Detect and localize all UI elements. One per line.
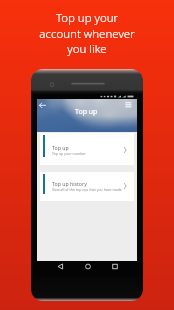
staticText: View all of the top ups that you have ma…	[52, 187, 122, 192]
staticText: Top up	[75, 107, 98, 117]
staticText: Top up your number	[52, 151, 86, 156]
staticText: Top up your account whenever you like	[0, 10, 174, 56]
button[interactable]: Menu	[124, 100, 135, 111]
button[interactable]: Top up history	[40, 172, 134, 201]
staticText: Top up	[52, 144, 69, 151]
button[interactable]: Back	[37, 100, 48, 111]
button[interactable]: Top up	[40, 133, 134, 165]
staticText: Top up history	[52, 180, 87, 187]
